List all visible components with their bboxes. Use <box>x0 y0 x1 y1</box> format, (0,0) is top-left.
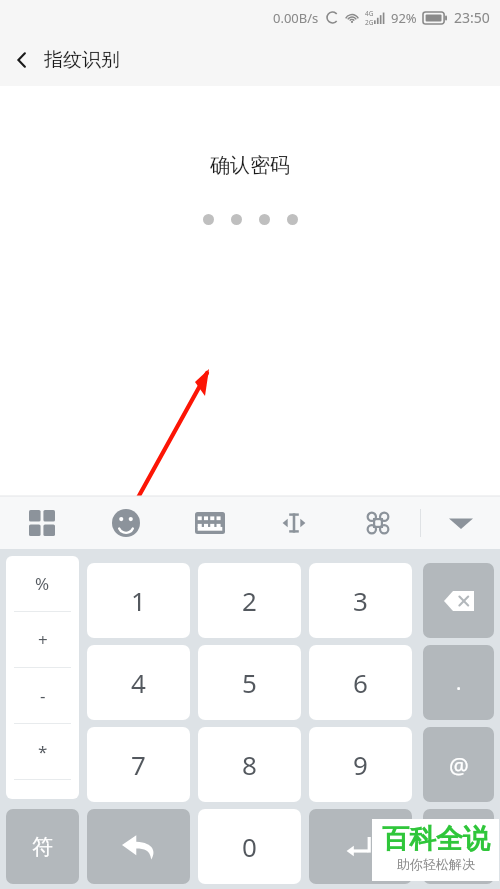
staticText: 5 <box>242 665 257 700</box>
button[interactable]: - <box>6 668 79 723</box>
staticText: 6 <box>353 665 368 700</box>
button[interactable]: 键盘 <box>168 496 252 549</box>
button[interactable]: 返回 <box>87 809 190 884</box>
button[interactable]: + <box>6 612 79 667</box>
button[interactable]: 返回 <box>0 38 44 82</box>
button[interactable]: 2 <box>198 563 301 638</box>
staticText: 92% <box>391 9 417 27</box>
button[interactable]: 删除 <box>423 563 494 638</box>
button[interactable]: 7 <box>87 727 190 802</box>
staticText: + <box>38 628 48 651</box>
button[interactable]: 9 <box>309 727 412 802</box>
staticText: - <box>40 684 46 707</box>
button[interactable] <box>423 809 494 884</box>
staticText: 23:50 <box>454 8 490 27</box>
button[interactable]: 5 <box>198 645 301 720</box>
button[interactable]: . <box>423 645 494 720</box>
staticText: 0 <box>242 829 257 864</box>
staticText: . <box>456 669 462 696</box>
staticText: 符 <box>32 834 53 860</box>
staticText: % <box>35 572 50 595</box>
staticText: 4 <box>131 665 146 700</box>
button[interactable]: 3 <box>309 563 412 638</box>
button[interactable]: 符 <box>6 809 79 884</box>
staticText: 百科全说 <box>382 822 490 856</box>
staticText: 3 <box>353 583 368 618</box>
button[interactable]: % <box>6 556 79 611</box>
staticText: * <box>38 740 48 763</box>
staticText: 指纹识别 <box>44 48 120 72</box>
button[interactable]: 网格 <box>0 496 84 549</box>
button[interactable]: 1 <box>87 563 190 638</box>
button[interactable]: 收起键盘 <box>421 496 500 549</box>
button[interactable]: 表情 <box>84 496 168 549</box>
button[interactable]: 光标 <box>252 496 336 549</box>
staticText: 9 <box>353 747 368 782</box>
button[interactable]: 4 <box>87 645 190 720</box>
staticText: @ <box>449 750 469 780</box>
staticText: 7 <box>131 747 146 782</box>
staticText: 1 <box>131 583 146 618</box>
button[interactable]: 回车 <box>309 809 412 884</box>
button[interactable]: 设置 <box>336 496 420 549</box>
staticText: 助你轻松解决 <box>397 856 475 872</box>
staticText: 2G <box>365 18 374 27</box>
button[interactable]: 8 <box>198 727 301 802</box>
staticText: 确认密码 <box>210 153 290 178</box>
button[interactable]: 6 <box>309 645 412 720</box>
button[interactable]: @ <box>423 727 494 802</box>
button[interactable]: 0 <box>198 809 301 884</box>
staticText: 0.00B/s <box>273 9 319 27</box>
staticText: 8 <box>242 747 257 782</box>
button[interactable]: * <box>6 724 79 779</box>
staticText: 4G <box>365 9 374 18</box>
staticText: 2 <box>242 583 257 618</box>
